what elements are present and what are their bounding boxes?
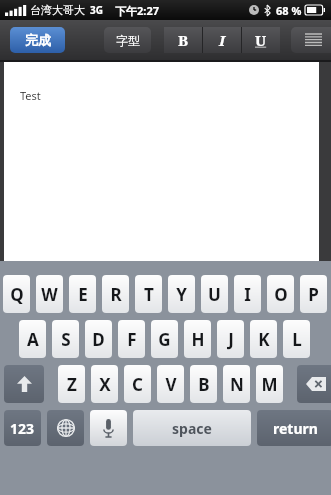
button[interactable]: Dictation xyxy=(90,410,127,446)
button[interactable]: W xyxy=(36,275,63,313)
staticText: space xyxy=(172,419,212,438)
button[interactable]: 123 xyxy=(4,410,41,446)
button[interactable]: K xyxy=(250,320,277,358)
staticText: R xyxy=(110,283,122,306)
button[interactable]: Q xyxy=(3,275,30,313)
staticText: D xyxy=(92,328,105,351)
button[interactable]: Backspace xyxy=(297,365,331,403)
staticText: Test xyxy=(20,88,41,103)
staticText: I xyxy=(244,283,251,306)
staticText: W xyxy=(41,283,58,306)
staticText: H xyxy=(191,328,205,351)
button[interactable]: J xyxy=(217,320,244,358)
staticText: F xyxy=(127,328,137,351)
staticText: Y xyxy=(176,283,187,306)
button[interactable]: Align xyxy=(291,27,331,53)
button[interactable]: F xyxy=(118,320,145,358)
button[interactable]: return xyxy=(257,410,331,446)
staticText: M xyxy=(261,373,278,396)
button[interactable]: B xyxy=(190,365,217,403)
button[interactable]: E xyxy=(69,275,96,313)
button[interactable]: 字型 xyxy=(104,27,151,53)
button[interactable]: Y xyxy=(168,275,195,313)
staticText: 台湾大哥大 xyxy=(30,3,85,17)
button[interactable]: V xyxy=(157,365,184,403)
staticText: B xyxy=(198,373,210,396)
staticText: return xyxy=(273,419,318,438)
button[interactable]: T xyxy=(135,275,162,313)
button[interactable]: H xyxy=(184,320,211,358)
staticText: E xyxy=(78,283,88,306)
staticText: T xyxy=(144,283,154,306)
staticText: K xyxy=(258,328,270,351)
staticText: 68 % xyxy=(276,3,302,18)
staticText: Q xyxy=(10,283,24,306)
button[interactable]: O xyxy=(267,275,294,313)
staticText: 3G xyxy=(90,3,103,17)
staticText: N xyxy=(230,373,244,396)
button[interactable]: I xyxy=(203,27,241,53)
staticText: V xyxy=(165,373,177,396)
button[interactable]: Change keyboard xyxy=(47,410,84,446)
staticText: C xyxy=(132,373,143,396)
button[interactable]: G xyxy=(151,320,178,358)
button[interactable]: C xyxy=(124,365,151,403)
button[interactable]: M xyxy=(256,365,283,403)
staticText: 下午2:27 xyxy=(115,3,159,18)
staticText: U xyxy=(255,30,267,50)
staticText: S xyxy=(61,328,71,351)
button[interactable]: R xyxy=(102,275,129,313)
button[interactable]: P xyxy=(300,275,327,313)
button[interactable]: N xyxy=(223,365,250,403)
staticText: 123 xyxy=(10,419,35,438)
staticText: G xyxy=(158,328,171,351)
staticText: I xyxy=(219,30,226,50)
button[interactable]: space xyxy=(133,410,251,446)
staticText: A xyxy=(27,328,39,351)
button[interactable]: X xyxy=(91,365,118,403)
button[interactable]: B xyxy=(164,27,202,53)
staticText: L xyxy=(292,328,302,351)
button[interactable]: Z xyxy=(58,365,85,403)
button[interactable]: A xyxy=(19,320,46,358)
staticText: J xyxy=(228,328,234,351)
button[interactable]: U xyxy=(242,27,280,53)
button[interactable]: I xyxy=(234,275,261,313)
button[interactable]: U xyxy=(201,275,228,313)
button[interactable]: Shift xyxy=(4,365,44,403)
staticText: B xyxy=(178,30,189,50)
staticText: 完成 xyxy=(25,32,51,48)
staticText: P xyxy=(308,283,319,306)
staticText: U xyxy=(208,283,221,306)
staticText: Z xyxy=(67,373,77,396)
staticText: X xyxy=(99,373,111,396)
button[interactable]: D xyxy=(85,320,112,358)
staticText: O xyxy=(274,283,288,306)
button[interactable]: 完成 xyxy=(10,27,65,53)
button[interactable]: S xyxy=(52,320,79,358)
staticText: 字型 xyxy=(116,33,140,48)
button[interactable]: L xyxy=(283,320,310,358)
